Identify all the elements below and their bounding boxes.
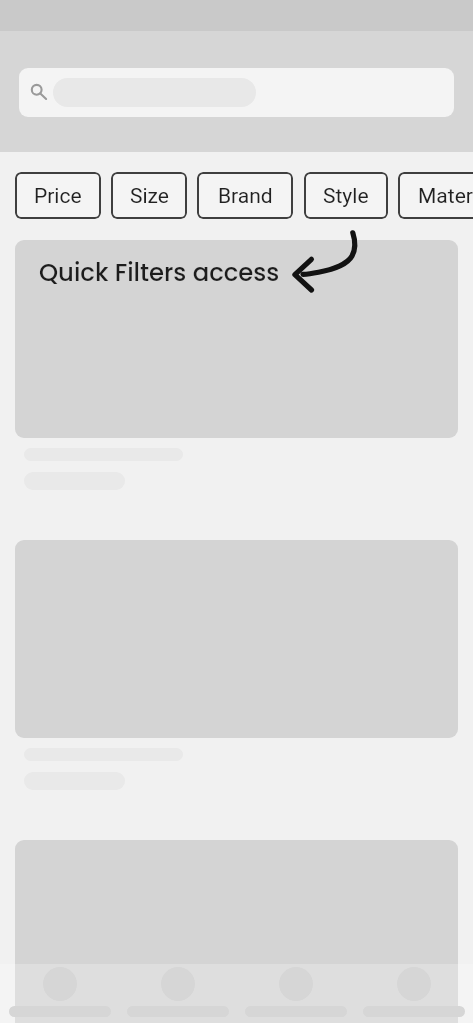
button[interactable]: Tab 2 bbox=[119, 964, 237, 1023]
button[interactable]: Tab 1 bbox=[0, 964, 119, 1023]
staticText: Quick Filters access bbox=[39, 255, 280, 289]
button[interactable]: Price bbox=[15, 172, 101, 219]
staticText: Brand bbox=[218, 184, 273, 209]
button[interactable]: Tab 3 bbox=[237, 964, 355, 1023]
staticText: Material bbox=[418, 184, 473, 209]
button[interactable] bbox=[15, 840, 458, 1023]
staticText: Style bbox=[323, 184, 369, 209]
button[interactable] bbox=[15, 240, 458, 438]
staticText: Size bbox=[130, 184, 169, 209]
button[interactable]: Style bbox=[304, 172, 388, 219]
button[interactable]: Tab 4 bbox=[355, 964, 473, 1023]
button[interactable]: Brand bbox=[197, 172, 293, 219]
staticText: Price bbox=[34, 184, 82, 209]
button[interactable]: Size bbox=[111, 172, 187, 219]
button[interactable]: Search bbox=[19, 68, 454, 117]
button[interactable]: Material bbox=[398, 172, 473, 219]
